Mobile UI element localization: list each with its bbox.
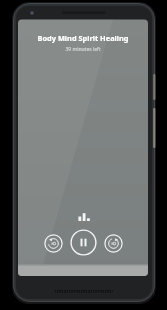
button[interactable]: Equalizer — [76, 209, 91, 224]
button[interactable]: Forward 30 seconds — [104, 234, 123, 253]
button[interactable]: Rewind 10 seconds — [44, 234, 63, 253]
button[interactable]: Pause — [70, 229, 97, 256]
staticText: 39 minutes left — [18, 46, 148, 55]
staticText: Body Mind Spirit Healing — [18, 33, 148, 44]
